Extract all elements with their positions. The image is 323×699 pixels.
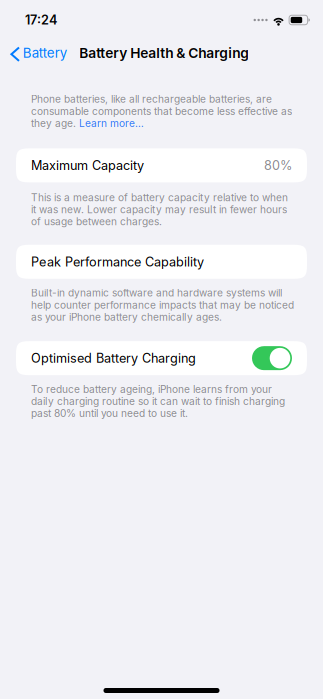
staticText: To reduce battery ageing, iPhone learns … bbox=[31, 383, 285, 420]
button[interactable]: Optimised Battery Charging bbox=[252, 346, 292, 370]
staticText: Peak Performance Capability bbox=[31, 254, 204, 269]
staticText: Built-in dynamic software and hardware s… bbox=[31, 287, 294, 323]
button[interactable]: Battery bbox=[0, 40, 79, 66]
staticText: 80% bbox=[264, 158, 292, 173]
staticText: Phone batteries, like all rechargeable b… bbox=[31, 93, 292, 129]
button[interactable]: Maximum Capacity bbox=[16, 148, 307, 182]
staticText: Maximum Capacity bbox=[31, 158, 144, 173]
staticText: 17:24 bbox=[25, 12, 57, 28]
button[interactable]: Optimised Battery Charging bbox=[16, 341, 307, 375]
staticText: Optimised Battery Charging bbox=[31, 350, 196, 366]
staticText: Battery Health & Charging bbox=[79, 45, 249, 61]
staticText: Battery bbox=[23, 45, 67, 61]
button[interactable]: Peak Performance Capability bbox=[16, 245, 307, 279]
staticText: This is a measure of battery capacity re… bbox=[31, 191, 288, 228]
